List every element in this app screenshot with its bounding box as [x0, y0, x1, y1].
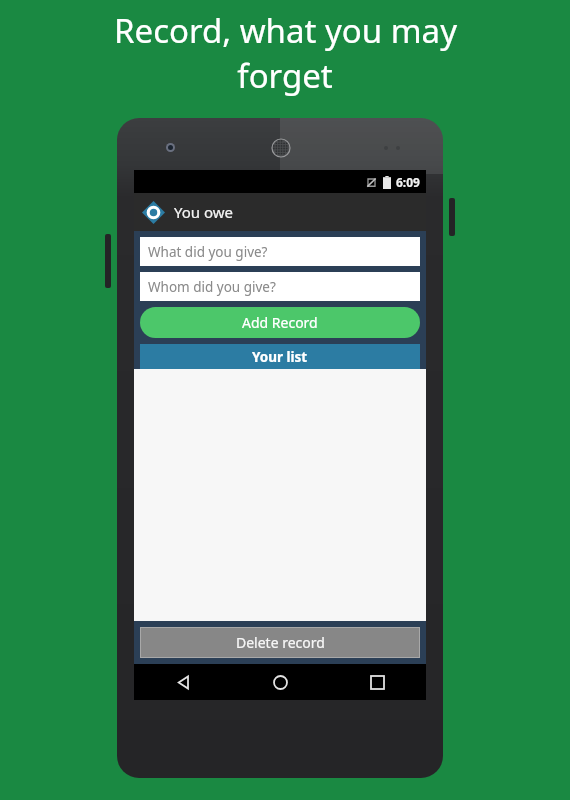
staticText: Whom did you give?: [148, 278, 276, 296]
other: App icon: [142, 201, 165, 224]
staticText: Add Record: [242, 313, 318, 332]
button[interactable]: Add Record: [140, 307, 420, 338]
button[interactable]: Whom did you give?: [140, 272, 420, 301]
staticText: You owe: [174, 202, 234, 222]
staticText: Record, what you may: [114, 8, 457, 53]
staticText: Your list: [252, 348, 308, 366]
staticText: 6:09: [396, 174, 420, 190]
button[interactable]: Recent apps: [329, 664, 426, 700]
button[interactable]: Back: [134, 664, 232, 700]
staticText: What did you give?: [148, 243, 268, 261]
button[interactable]: Your list: [140, 344, 420, 369]
button[interactable]: What did you give?: [140, 237, 420, 266]
staticText: Delete record: [236, 633, 325, 652]
button[interactable]: Delete record: [141, 628, 419, 657]
staticText: forget: [237, 53, 333, 98]
button[interactable]: Home: [232, 664, 329, 700]
